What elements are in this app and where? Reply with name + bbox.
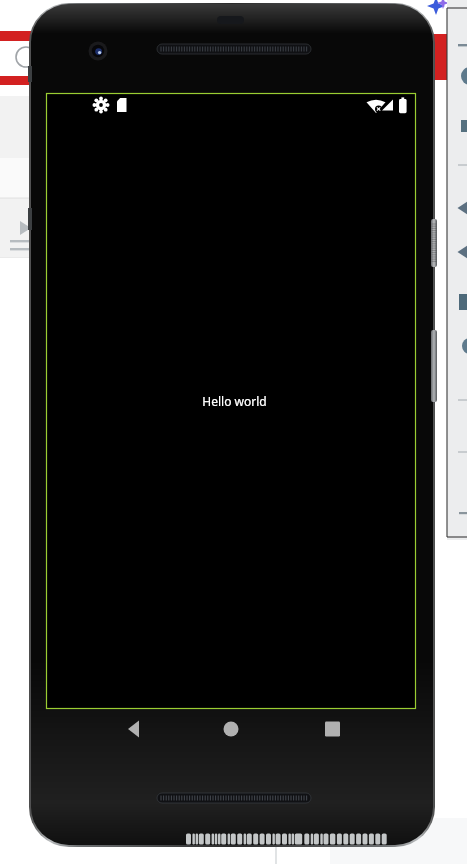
- button[interactable]: Hello world: [169, 386, 299, 416]
- button[interactable]: Back: [108, 714, 156, 746]
- button[interactable]: Home: [207, 714, 255, 746]
- button[interactable]: Recent apps: [309, 714, 357, 746]
- button[interactable]: Settings: [90, 95, 116, 115]
- staticText: Hello world: [202, 393, 267, 409]
